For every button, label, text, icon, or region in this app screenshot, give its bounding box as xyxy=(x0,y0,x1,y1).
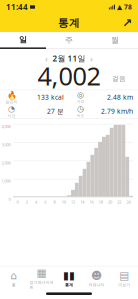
staticText: › xyxy=(90,52,93,64)
button[interactable]: 월 xyxy=(92,32,138,49)
staticText: 8 xyxy=(53,199,55,205)
button[interactable]: ☻ xyxy=(83,266,110,290)
staticText: 20 xyxy=(108,199,112,205)
staticText: 16 xyxy=(89,199,93,205)
staticText: 2월 11일 xyxy=(52,53,85,64)
staticText: 일 xyxy=(19,35,27,45)
staticText: 4 xyxy=(35,199,37,205)
staticText: 속도 xyxy=(76,113,84,118)
staticText: ▲ xyxy=(117,3,122,11)
staticText: 11:44 xyxy=(6,2,28,12)
staticText: 거리 xyxy=(76,99,84,104)
staticText: 월 xyxy=(111,35,119,45)
staticText: 걸음 xyxy=(112,74,126,83)
staticText: ☻ xyxy=(91,269,102,281)
staticText: ◎ xyxy=(77,90,84,99)
staticText: 0 xyxy=(8,196,10,202)
staticText: 칼로리 xyxy=(5,99,17,104)
staticText: 78 xyxy=(124,3,132,11)
staticText: 더보기 xyxy=(118,282,130,287)
staticText: 22 xyxy=(117,199,121,205)
staticText: 18 xyxy=(99,199,103,205)
button[interactable]: 일 xyxy=(0,32,46,49)
staticText: 2.48 km xyxy=(107,93,133,102)
staticText: 14 xyxy=(80,199,84,205)
button[interactable]: Share xyxy=(120,15,134,31)
staticText: 4,000 xyxy=(1,124,10,129)
staticText: ⌂ xyxy=(10,269,17,281)
staticText: 12 xyxy=(71,199,75,205)
staticText: 2 xyxy=(26,199,28,205)
button[interactable]: ▤ xyxy=(110,266,138,290)
staticText: 27 분 xyxy=(47,107,64,116)
staticText: ◔ xyxy=(8,104,15,113)
staticText: 통계 xyxy=(65,282,73,287)
button[interactable]: Next day xyxy=(87,54,95,63)
staticText: 홈 xyxy=(12,282,16,287)
staticText: ↗ xyxy=(122,16,132,30)
staticText: ‹ xyxy=(45,52,48,64)
button[interactable]: ▮▮ xyxy=(55,266,83,290)
button[interactable]: 주 xyxy=(46,32,92,49)
staticText: 2.79 km/h xyxy=(101,107,133,116)
staticText: 3,000 xyxy=(1,142,10,147)
staticText: ▤ xyxy=(119,269,129,281)
button[interactable]: ▦ xyxy=(28,266,55,290)
staticText: 걷기와다이어트 xyxy=(29,280,53,290)
button[interactable]: Previous day xyxy=(42,54,50,63)
staticText: 주 xyxy=(65,35,73,45)
staticText: 24 xyxy=(126,199,130,205)
staticText: ▦ xyxy=(36,267,46,279)
staticText: 133 kcal xyxy=(37,93,64,102)
staticText: 1,000 xyxy=(1,178,10,184)
staticText: ◷ xyxy=(77,104,84,113)
staticText: 🔥 xyxy=(6,90,16,99)
staticText: 10 xyxy=(62,199,66,205)
staticText: 0 xyxy=(17,199,19,205)
staticText: 커뮤니티 xyxy=(89,282,105,287)
staticText: 4,002 xyxy=(37,59,100,92)
staticText: 2,000 xyxy=(1,160,10,165)
staticText: 6 xyxy=(44,199,46,205)
staticText: 시간 xyxy=(7,113,15,118)
button[interactable]: ⌂ xyxy=(0,266,28,290)
staticText: 통계 xyxy=(58,16,80,29)
staticText: ▮▮ xyxy=(63,269,75,281)
